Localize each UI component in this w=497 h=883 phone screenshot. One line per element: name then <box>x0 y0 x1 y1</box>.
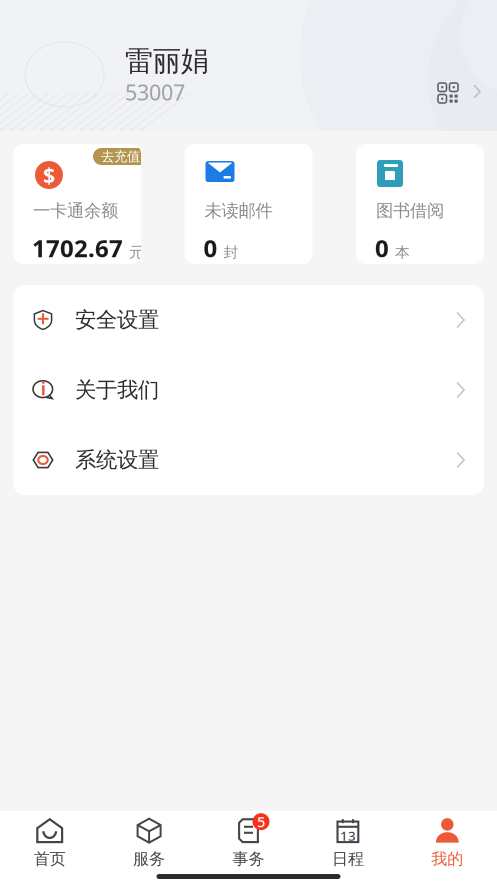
staticText: 图书借阅 <box>376 200 444 221</box>
staticText: 53007 <box>125 78 185 106</box>
staticText: 未读邮件 <box>204 200 272 221</box>
staticText: 安全设置 <box>75 307 159 333</box>
staticText: 雷丽娟 <box>125 44 209 78</box>
staticText: 元 <box>129 243 144 261</box>
staticText: 关于我们 <box>75 377 159 403</box>
button[interactable]: 安全设置 <box>13 285 484 355</box>
staticText: 封 <box>223 243 238 261</box>
button[interactable]: 服务 <box>99 815 199 871</box>
button[interactable]: 首页 <box>0 815 99 871</box>
button[interactable]: 系统设置 <box>13 425 484 495</box>
button[interactable]: 图书借阅 0 本 <box>356 144 484 264</box>
staticText: 去充值 <box>101 148 140 165</box>
staticText: 系统设置 <box>75 447 159 473</box>
staticText: 0 <box>203 232 217 264</box>
staticText: i <box>41 377 46 400</box>
button[interactable]: i <box>13 355 484 425</box>
button[interactable]: 扫码 <box>435 80 461 106</box>
staticText: 事务 <box>232 849 264 869</box>
staticText: 本 <box>395 243 410 261</box>
staticText: 日程 <box>332 849 364 869</box>
staticText: 0 <box>375 232 389 264</box>
staticText: 我的 <box>431 849 463 869</box>
staticText: 一卡通余额 <box>33 200 118 221</box>
staticText: 服务 <box>133 849 165 869</box>
staticText: 5 <box>257 812 265 831</box>
staticText: 首页 <box>34 849 66 869</box>
button[interactable]: 5 <box>199 815 298 871</box>
button[interactable]: 一卡通余额 1702.67 元 <box>13 144 141 264</box>
button[interactable]: 未读邮件 0 封 <box>184 144 312 264</box>
button[interactable]: 我的 <box>398 815 497 871</box>
staticText: 1702.67 <box>32 232 123 264</box>
staticText: 13 <box>340 827 356 844</box>
button[interactable]: 13 <box>298 815 398 871</box>
staticText: $ <box>43 161 55 189</box>
